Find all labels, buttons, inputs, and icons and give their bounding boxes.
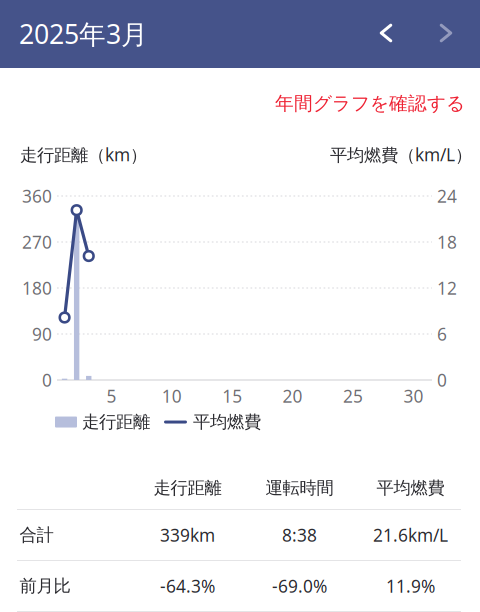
button[interactable]: 年間グラフを確認する <box>275 92 465 115</box>
staticText: 15 <box>222 384 242 407</box>
staticText: 11.9% <box>386 574 435 597</box>
staticText: 8:38 <box>282 523 317 546</box>
staticText: 20 <box>283 384 303 407</box>
staticText: 平均燃費（km/L） <box>330 143 472 166</box>
staticText: 走行距離 <box>82 411 150 433</box>
staticText: 0 <box>437 368 447 391</box>
button[interactable]: Previous month <box>363 10 409 56</box>
staticText: 6 <box>437 322 447 345</box>
staticText: 180 <box>22 276 52 299</box>
staticText: 12 <box>437 276 457 299</box>
staticText: 2025年3月 <box>19 16 148 51</box>
staticText: 24 <box>437 184 457 207</box>
staticText: 25 <box>343 384 363 407</box>
staticText: 平均燃費 <box>193 411 261 433</box>
staticText: 年間グラフを確認する <box>275 92 465 115</box>
staticText: 5 <box>106 384 116 407</box>
staticText: 360 <box>22 184 52 207</box>
staticText: 平均燃費 <box>376 477 444 499</box>
staticText: 走行距離（km） <box>20 143 147 166</box>
staticText: -69.0% <box>272 574 327 597</box>
staticText: 10 <box>162 384 182 407</box>
button[interactable]: Next month <box>423 10 469 56</box>
staticText: 運転時間 <box>265 477 333 499</box>
staticText: 270 <box>22 230 52 253</box>
staticText: -64.3% <box>160 574 215 597</box>
staticText: 走行距離 <box>153 477 221 499</box>
staticText: 339km <box>160 523 215 546</box>
staticText: 前月比 <box>19 575 70 597</box>
staticText: 30 <box>403 384 423 407</box>
staticText: 18 <box>437 230 457 253</box>
staticText: 0 <box>42 368 52 391</box>
staticText: 90 <box>32 322 52 345</box>
staticText: 21.6km/L <box>373 523 448 546</box>
staticText: 合計 <box>19 524 53 546</box>
